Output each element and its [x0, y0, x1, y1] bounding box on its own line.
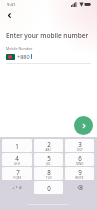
staticText: 9	[78, 168, 82, 176]
staticText: 5	[47, 154, 51, 162]
button[interactable]: 5	[34, 153, 63, 166]
button[interactable]: 2	[34, 139, 63, 152]
staticText: 8	[47, 168, 51, 176]
button[interactable]: 4	[2, 153, 32, 166]
button[interactable]: Continue	[74, 116, 93, 135]
staticText: 2	[47, 140, 51, 148]
staticText: 7	[16, 168, 20, 176]
staticText: TUV	[46, 176, 52, 180]
button[interactable]: + * #	[2, 181, 32, 194]
staticText: PQRS	[13, 176, 22, 180]
button[interactable]: 0	[34, 181, 63, 194]
staticText: ABC	[45, 148, 52, 152]
staticText: 3	[78, 140, 82, 148]
staticText: Mobile Number	[6, 46, 33, 51]
button[interactable]: 6	[65, 153, 94, 166]
staticText: MNO	[76, 162, 84, 166]
staticText: Enter your mobile number	[6, 31, 89, 40]
staticText: JKL	[46, 162, 51, 166]
staticText: + * #	[12, 185, 22, 191]
staticText: 4	[15, 154, 19, 162]
button[interactable]: 3	[65, 139, 94, 152]
staticText: 9:41	[7, 2, 16, 8]
staticText: DEF	[77, 148, 83, 152]
button[interactable]: 7	[2, 167, 32, 180]
staticText: WXYZ	[75, 176, 84, 180]
button[interactable]: 8	[34, 167, 63, 180]
staticText: GHI	[14, 162, 20, 166]
button[interactable]: Back	[3, 9, 15, 21]
button[interactable]: Delete	[65, 181, 94, 194]
button[interactable]: 9	[65, 167, 94, 180]
staticText: 6	[78, 154, 82, 162]
staticText: 1	[15, 142, 19, 150]
staticText: 0	[47, 184, 51, 192]
staticText: +880	[17, 53, 30, 60]
button[interactable]: 1	[2, 139, 32, 152]
